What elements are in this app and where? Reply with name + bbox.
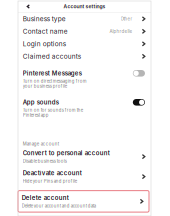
button[interactable]: Login options (18, 38, 151, 50)
staticText: Turn on for sounds from the Pinterest ap… (23, 107, 83, 118)
staticText: Account settings (63, 3, 105, 9)
staticText: Manage account (23, 141, 59, 147)
staticText: Contact name (23, 27, 68, 35)
button[interactable]: Back (18, 1, 40, 11)
staticText: App sounds (23, 99, 59, 106)
staticText: Other (120, 16, 132, 21)
staticText: Turn on direct messaging from your busin… (23, 78, 87, 89)
staticText: Hide your Pins and profile (23, 179, 77, 184)
staticText: Disable business tools (23, 159, 67, 164)
staticText: Pinterest Messages (23, 70, 82, 77)
button[interactable]: Business type (18, 13, 151, 25)
button[interactable]: Contact name (18, 25, 151, 38)
staticText: Convert to personal account (23, 149, 110, 157)
staticText: Delete account (22, 194, 69, 201)
button[interactable]: Claimed accounts (18, 50, 151, 63)
staticText: Claimed accounts (23, 52, 81, 60)
button[interactable]: Convert to personal account (18, 147, 151, 167)
button[interactable]: App sounds (18, 92, 151, 121)
staticText: Deactivate account (23, 169, 82, 177)
button[interactable]: Pinterest Messages (18, 63, 151, 92)
staticText: Business type (23, 15, 66, 23)
button[interactable]: Deactivate account (18, 167, 151, 187)
staticText: Alphrdelle (109, 29, 132, 34)
button[interactable]: Delete account (18, 191, 149, 212)
staticText: Delete your account and account data (22, 203, 96, 208)
staticText: Login options (23, 40, 66, 48)
